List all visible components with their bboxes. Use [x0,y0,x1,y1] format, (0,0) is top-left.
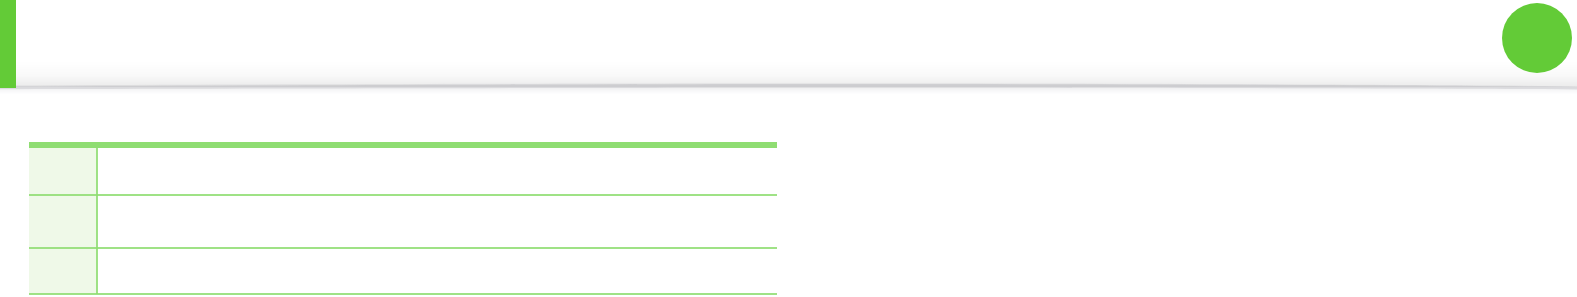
button[interactable]: Add [1502,3,1572,73]
